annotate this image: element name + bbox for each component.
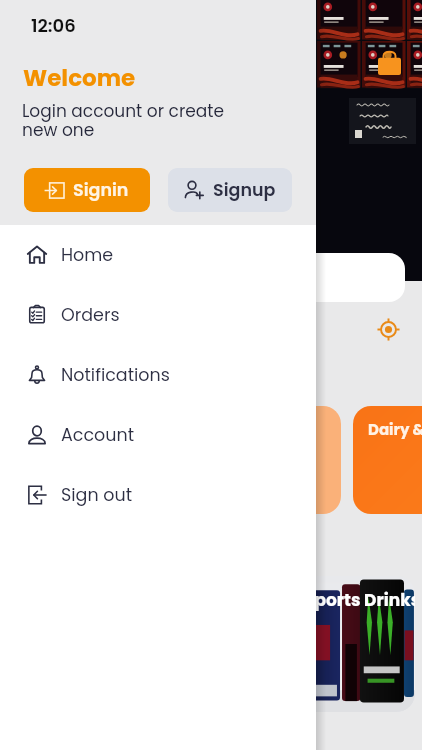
staticText: Home [61, 243, 114, 268]
button[interactable]: Notifications [0, 345, 316, 405]
staticText: Notifications [61, 363, 170, 388]
button[interactable]: Signin [24, 168, 150, 212]
button[interactable] [250, 253, 405, 302]
staticText: Welcome [23, 62, 136, 94]
staticText: 12:06 [31, 13, 76, 38]
button[interactable]: Home [0, 225, 316, 285]
button[interactable]: Sports Drinks [262, 576, 415, 712]
button[interactable] [250, 406, 341, 514]
button[interactable]: Use current location [377, 318, 400, 341]
staticText: Sign out [61, 483, 133, 508]
staticText: Login account or create new one [22, 99, 224, 142]
staticText: Signin [73, 178, 129, 203]
staticText: Account [61, 423, 135, 448]
staticText: Signup [213, 178, 276, 203]
button[interactable]: Dairy & Eggs [353, 406, 422, 514]
staticText: Orders [61, 303, 120, 328]
button[interactable]: Account [0, 405, 316, 465]
button[interactable]: Signup [168, 168, 292, 212]
button[interactable]: Sign out [0, 465, 316, 525]
staticText: Sports Drinks [304, 588, 415, 612]
button[interactable]: Orders [0, 285, 316, 345]
staticText: Dairy & Eggs [368, 419, 422, 440]
